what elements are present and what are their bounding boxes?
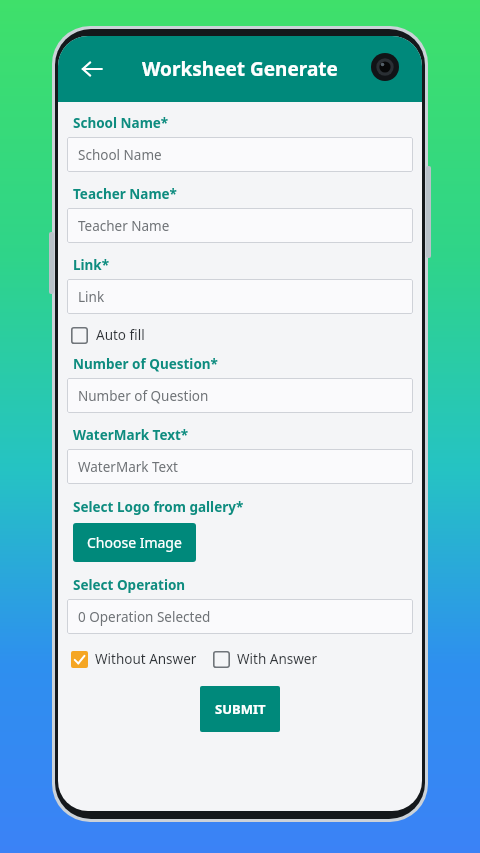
- button[interactable]: Back: [70, 47, 114, 91]
- staticText: Choose Image: [87, 533, 182, 552]
- staticText: Select Operation: [73, 576, 186, 594]
- staticText: School Name: [78, 146, 162, 164]
- staticText: Auto fill: [96, 326, 145, 344]
- staticText: WaterMark Text: [78, 458, 178, 476]
- staticText: School Name*: [73, 114, 169, 132]
- staticText: Link: [78, 288, 105, 306]
- staticText: With Answer: [237, 650, 318, 668]
- staticText: Link*: [73, 256, 110, 274]
- button[interactable]: Number of Question: [67, 378, 413, 413]
- button[interactable]: With Answer: [209, 647, 322, 671]
- button[interactable]: Without Answer: [67, 647, 201, 671]
- staticText: Number of Question: [78, 387, 209, 405]
- staticText: Teacher Name*: [73, 185, 177, 203]
- staticText: SUBMIT: [215, 700, 266, 718]
- button[interactable]: School Name: [67, 137, 413, 172]
- button[interactable]: Auto fill: [67, 323, 149, 347]
- staticText: Select Logo from gallery*: [73, 498, 244, 516]
- button[interactable]: 0 Operation Selected: [67, 599, 413, 634]
- staticText: Number of Question*: [73, 355, 218, 373]
- staticText: Without Answer: [95, 650, 197, 668]
- button[interactable]: Choose Image: [73, 523, 196, 562]
- button[interactable]: Link: [67, 279, 413, 314]
- staticText: 0 Operation Selected: [78, 608, 211, 626]
- button[interactable]: WaterMark Text: [67, 449, 413, 484]
- staticText: WaterMark Text*: [73, 426, 189, 444]
- staticText: Teacher Name: [78, 217, 170, 235]
- button[interactable]: SUBMIT: [200, 686, 280, 732]
- button[interactable]: Teacher Name: [67, 208, 413, 243]
- staticText: Worksheet Generate: [142, 56, 338, 82]
